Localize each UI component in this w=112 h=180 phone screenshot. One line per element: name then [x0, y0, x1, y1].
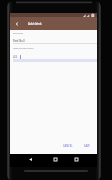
- staticText: SAVE: [84, 144, 90, 147]
- staticText: 4.5: [13, 55, 18, 59]
- button[interactable]: SAVE: [81, 141, 92, 150]
- button[interactable]: CANCEL: [61, 141, 74, 150]
- button[interactable]: Recent apps: [71, 154, 81, 164]
- button[interactable]: Navigate up: [10, 17, 23, 30]
- staticText: caffeine content (mg/ml): [13, 47, 34, 49]
- staticText: Add drink: [28, 22, 42, 26]
- staticText: Drink name: [13, 32, 23, 34]
- staticText: CANCEL: [63, 144, 73, 147]
- staticText: Red Bull: [13, 39, 25, 43]
- button[interactable]: Back: [25, 154, 35, 164]
- button[interactable]: Home: [50, 154, 60, 164]
